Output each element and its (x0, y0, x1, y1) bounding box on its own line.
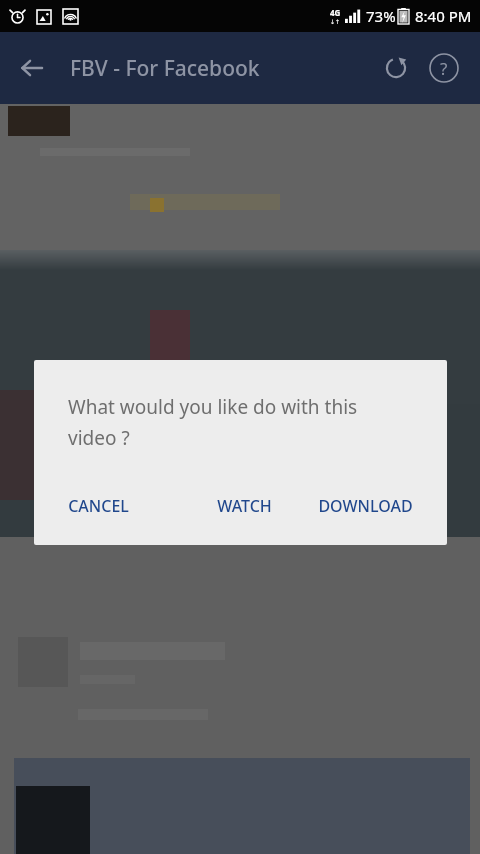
button[interactable]: WATCH (205, 489, 284, 523)
staticText: DOWNLOAD (318, 495, 413, 517)
staticText: WATCH (217, 495, 272, 517)
staticText: 8:40 PM (415, 6, 472, 26)
staticText: 73% (366, 6, 396, 26)
button[interactable]: Refresh (372, 44, 420, 92)
staticText: 4G (330, 7, 341, 18)
staticText: FBV - For Facebook (70, 54, 260, 83)
button[interactable]: Back (8, 44, 56, 92)
staticText: CANCEL (68, 495, 129, 517)
staticText: What would you like do with this video ? (68, 394, 388, 450)
button[interactable]: Help (420, 44, 468, 92)
staticText: ? (440, 57, 448, 80)
button[interactable]: DOWNLOAD (306, 489, 425, 523)
staticText: ↓↑ (330, 18, 341, 25)
button[interactable]: CANCEL (56, 489, 141, 523)
